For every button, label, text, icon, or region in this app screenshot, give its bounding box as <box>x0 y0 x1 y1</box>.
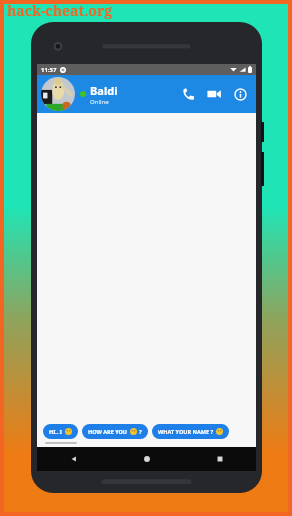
button[interactable]: Info <box>227 81 253 107</box>
staticText: hack-cheat.org <box>7 1 113 20</box>
button[interactable]: Back <box>37 447 110 471</box>
button[interactable]: HI.. I <box>43 424 78 439</box>
button[interactable]: Recents <box>183 447 256 471</box>
button[interactable]: Contact photo <box>41 77 75 111</box>
button[interactable]: WHAT YOUR NAME ? <box>152 424 229 439</box>
staticText: HOW ARE YOU <box>88 428 128 435</box>
staticText: ? <box>139 428 142 435</box>
button[interactable]: Call <box>175 81 201 107</box>
staticText: WHAT YOUR NAME ? <box>158 428 214 435</box>
staticText: Baldi <box>90 83 118 98</box>
staticText: Online <box>90 98 109 106</box>
button[interactable]: Video call <box>201 81 227 107</box>
staticText: HI.. I <box>49 428 63 435</box>
staticText: 11:57 <box>41 66 57 74</box>
button[interactable]: HOW ARE YOU <box>82 424 148 439</box>
button[interactable]: Home <box>110 447 183 471</box>
